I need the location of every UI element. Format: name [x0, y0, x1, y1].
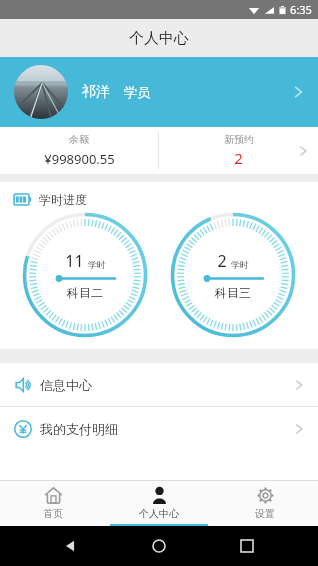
staticText: 11: [65, 250, 84, 272]
staticText: 2: [234, 148, 243, 168]
button[interactable]: Home: [142, 529, 176, 563]
staticText: 设置: [255, 507, 275, 520]
staticText: 学员: [124, 84, 150, 100]
staticText: 我的支付明细: [40, 421, 118, 437]
button[interactable]: 首页: [0, 481, 106, 526]
staticText: 科目三: [215, 285, 251, 300]
staticText: 科目二: [67, 285, 103, 300]
staticText: 首页: [43, 507, 63, 520]
button[interactable]: Back: [54, 529, 88, 563]
staticText: 个人中心: [129, 29, 189, 48]
staticText: 信息中心: [40, 377, 92, 393]
staticText: 祁洋: [82, 83, 110, 101]
button[interactable]: 个人中心: [106, 481, 212, 526]
staticText: 新预约: [224, 133, 254, 146]
button[interactable]: 余额: [0, 127, 158, 174]
button[interactable]: 我的支付明细: [0, 407, 318, 450]
staticText: 学时: [88, 259, 106, 270]
button[interactable]: 2: [169, 211, 297, 339]
staticText: 个人中心: [139, 507, 179, 520]
staticText: ¥998900.55: [44, 150, 115, 168]
staticText: 6:35: [290, 2, 312, 17]
button[interactable]: 新预约: [159, 127, 318, 174]
staticText: 2: [217, 250, 227, 272]
button[interactable]: 信息中心: [0, 363, 318, 406]
button[interactable]: 11: [21, 211, 149, 339]
button[interactable]: 设置: [212, 481, 318, 526]
staticText: 余额: [69, 133, 89, 146]
staticText: 学时: [231, 259, 249, 270]
button[interactable]: 祁洋: [0, 57, 318, 127]
button[interactable]: Recents: [230, 529, 264, 563]
staticText: 学时进度: [39, 192, 87, 207]
